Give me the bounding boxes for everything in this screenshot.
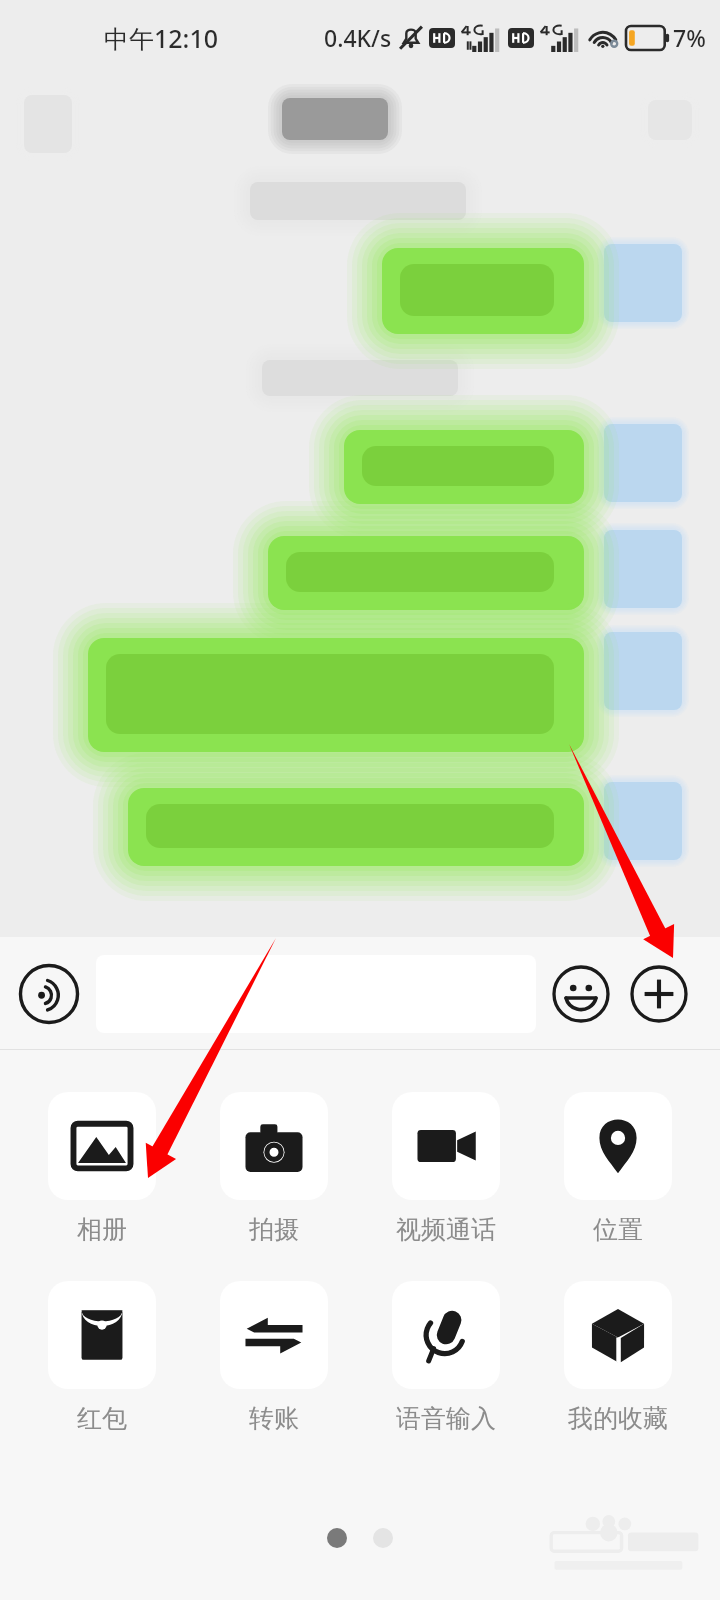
button[interactable]: 位置 — [550, 1092, 686, 1245]
button[interactable]: 视频通话 — [378, 1092, 514, 1245]
staticText: 语音输入 — [396, 1403, 496, 1434]
staticText: 中午12:10 — [104, 21, 219, 55]
button[interactable]: 转账 — [206, 1281, 342, 1434]
staticText: 7% — [673, 22, 706, 53]
button[interactable] — [96, 955, 536, 1033]
staticText: 视频通话 — [396, 1214, 496, 1245]
button[interactable]: 语音输入 — [378, 1281, 514, 1434]
staticText: 转账 — [249, 1403, 299, 1434]
staticText: 0.4K/s — [324, 22, 392, 53]
staticText: 我的收藏 — [568, 1403, 668, 1434]
button[interactable]: 我的收藏 — [550, 1281, 686, 1434]
staticText: 拍摄 — [249, 1214, 299, 1245]
staticText: 位置 — [593, 1214, 643, 1245]
button[interactable]: Emoji — [550, 963, 612, 1025]
button[interactable]: Voice message — [18, 963, 80, 1025]
button[interactable]: More functions — [628, 963, 690, 1025]
button[interactable]: 红包 — [34, 1281, 170, 1434]
button[interactable]: 相册 — [34, 1092, 170, 1245]
staticText: 相册 — [77, 1214, 127, 1245]
staticText: 红包 — [77, 1403, 127, 1434]
button[interactable]: 拍摄 — [206, 1092, 342, 1245]
